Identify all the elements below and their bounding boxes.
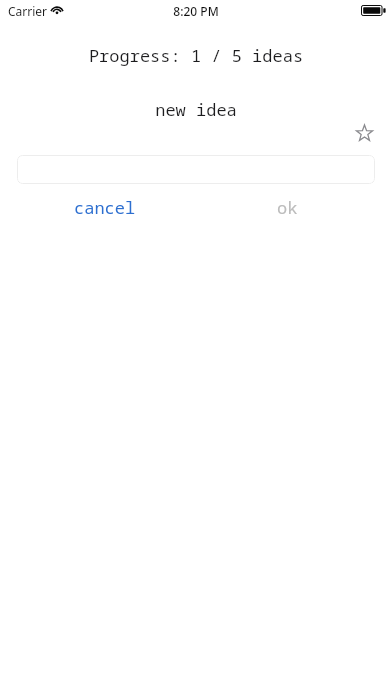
button[interactable]: [17, 155, 375, 184]
staticText: Carrier: [8, 3, 48, 19]
button[interactable]: Mark as favourite: [350, 119, 378, 147]
staticText: 8:20 PM: [0, 3, 392, 696]
button[interactable]: ok: [269, 194, 307, 220]
staticText: cancel: [74, 196, 136, 219]
staticText: new idea: [0, 98, 392, 696]
staticText: ok: [277, 196, 298, 219]
button[interactable]: cancel: [66, 194, 140, 220]
staticText: Progress: 1 / 5 ideas: [0, 44, 392, 696]
